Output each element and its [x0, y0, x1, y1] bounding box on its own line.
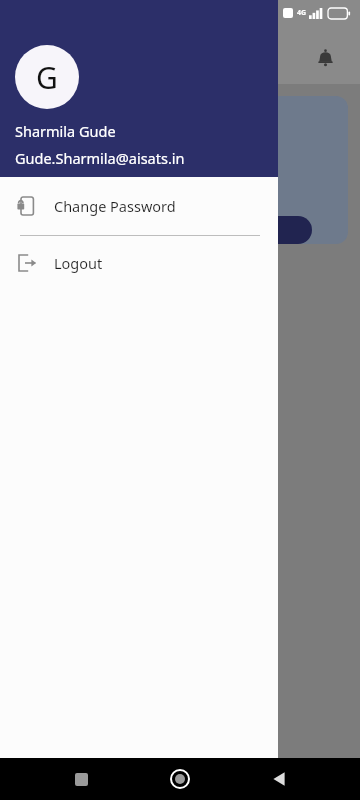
button[interactable]: Change Password [0, 177, 278, 235]
staticText: Sharmila Gude [15, 121, 116, 141]
button[interactable] [196, 216, 312, 244]
button[interactable]: Logout [0, 236, 278, 290]
button[interactable]: Recents [63, 761, 99, 797]
staticText: Gude.Sharmila@aisats.in [15, 148, 185, 168]
button[interactable]: Home [162, 761, 198, 797]
button[interactable]: Notifications [308, 40, 342, 74]
staticText: Logout [54, 253, 103, 273]
staticText: Change Password [54, 196, 176, 216]
button[interactable]: G [15, 45, 79, 109]
staticText: App Version : 1.0.1 [0, 757, 278, 776]
button[interactable]: Back [261, 761, 297, 797]
staticText: 4G [297, 8, 307, 18]
staticText: G [36, 57, 58, 98]
